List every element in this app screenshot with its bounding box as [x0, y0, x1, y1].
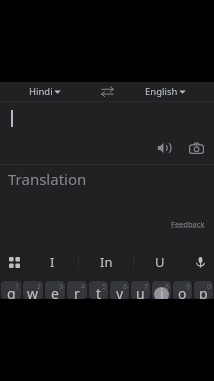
staticText: 4: [81, 282, 86, 292]
staticText: y: [116, 284, 124, 299]
staticText: Hindi: [29, 85, 53, 98]
staticText: Feedback: [171, 219, 205, 229]
staticText: e: [51, 284, 59, 299]
staticText: 3: [59, 282, 64, 292]
staticText: o: [178, 284, 187, 299]
button[interactable]: In: [79, 243, 133, 281]
button[interactable]: Voice input: [190, 252, 210, 272]
staticText: Translation: [8, 169, 87, 189]
staticText: u: [136, 284, 145, 299]
button[interactable]: Open apps: [4, 252, 24, 272]
button[interactable]: [194, 281, 213, 299]
staticText: 7: [144, 282, 149, 292]
button[interactable]: Camera: [182, 134, 210, 162]
button[interactable]: Hindi: [24, 82, 66, 101]
staticText: English: [145, 85, 178, 98]
button[interactable]: Swap languages: [94, 82, 120, 101]
button[interactable]: Feedback: [171, 219, 205, 229]
staticText: q: [7, 284, 16, 299]
button[interactable]: English: [140, 82, 191, 101]
staticText: 2: [37, 282, 42, 292]
staticText: r: [74, 284, 80, 299]
button[interactable]: [1, 281, 21, 299]
button[interactable]: [89, 281, 108, 299]
button[interactable]: [45, 281, 65, 299]
staticText: 0: [207, 282, 212, 292]
staticText: w: [27, 284, 39, 299]
button[interactable]: I: [26, 243, 78, 281]
button[interactable]: [23, 281, 43, 299]
staticText: t: [96, 284, 102, 299]
staticText: p: [199, 284, 208, 299]
staticText: 8: [165, 282, 170, 292]
button[interactable]: [131, 281, 150, 299]
staticText: 9: [186, 282, 191, 292]
button[interactable]: Listen: [150, 134, 178, 162]
button[interactable]: [110, 281, 129, 299]
staticText: 1: [15, 282, 20, 292]
staticText: In: [100, 253, 113, 271]
staticText: i: [160, 284, 164, 299]
staticText: 5: [102, 282, 107, 292]
button[interactable]: [173, 281, 192, 299]
staticText: U: [155, 253, 165, 271]
button[interactable]: [67, 281, 87, 299]
staticText: 6: [123, 282, 128, 292]
button[interactable]: U: [134, 243, 186, 281]
staticText: I: [50, 253, 55, 271]
button[interactable]: [152, 281, 171, 299]
